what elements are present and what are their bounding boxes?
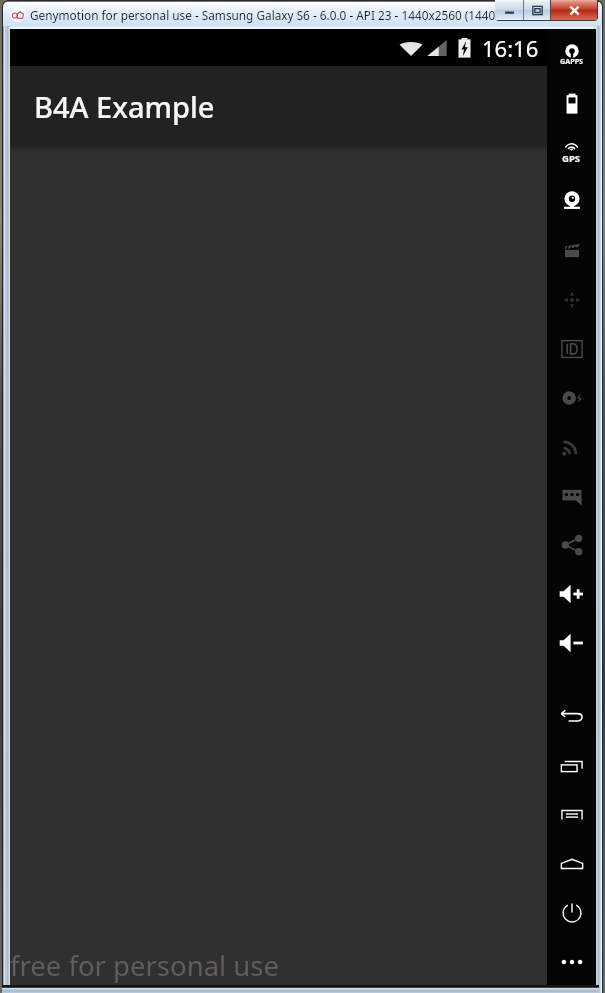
button[interactable]: Volume down <box>547 618 596 667</box>
button[interactable]: Minimize <box>495 0 523 20</box>
button[interactable]: Navigation pad <box>547 275 596 324</box>
button[interactable]: Camera <box>547 176 596 225</box>
button[interactable]: Battery widget <box>547 78 596 127</box>
button[interactable]: Home <box>547 839 596 888</box>
staticText: GAPPS <box>560 56 584 66</box>
button[interactable]: Menu <box>547 790 596 839</box>
button[interactable]: GPS <box>547 127 596 176</box>
staticText: GPS <box>562 152 581 165</box>
staticText: Genymotion for personal use - Samsung Ga… <box>30 7 505 23</box>
staticText: 16:16 <box>482 33 539 63</box>
button[interactable]: Power <box>547 888 596 937</box>
button[interactable]: Network <box>547 422 596 471</box>
staticText: B4A Example <box>34 87 215 126</box>
button[interactable]: Recent apps <box>547 741 596 790</box>
button[interactable]: Identifiers <box>547 324 596 373</box>
button[interactable]: Messages <box>547 471 596 520</box>
button[interactable]: Disk IO <box>547 373 596 422</box>
button[interactable]: Share <box>547 520 596 569</box>
button[interactable]: Volume up <box>547 569 596 618</box>
button[interactable]: More options <box>547 937 596 986</box>
staticText: free for personal use <box>10 947 279 984</box>
button[interactable]: Maximize <box>524 0 550 20</box>
button[interactable]: GAPPS <box>547 29 596 78</box>
button[interactable]: Record screen <box>547 226 596 275</box>
button[interactable]: Back <box>547 692 596 741</box>
button[interactable]: Close <box>551 0 597 20</box>
